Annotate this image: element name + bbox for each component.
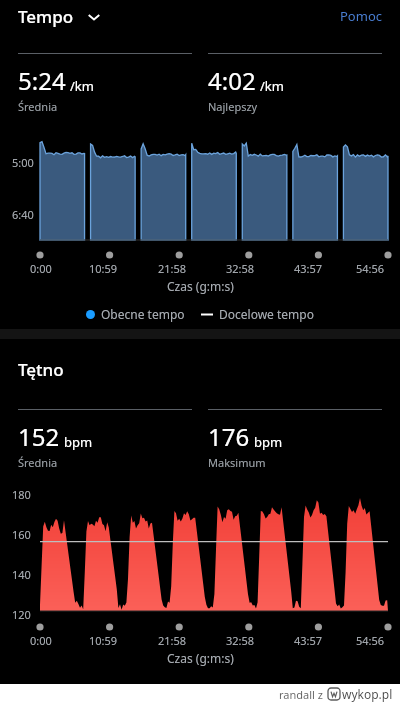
staticText: 5:00 bbox=[12, 155, 34, 170]
staticText: Maksimum bbox=[208, 455, 266, 470]
staticText: 4:02 bbox=[208, 64, 256, 97]
staticText: Pomoc bbox=[340, 7, 382, 25]
button[interactable]: Tętno bbox=[18, 358, 382, 381]
staticText: 6:40 bbox=[12, 207, 34, 222]
staticText: 140 bbox=[12, 567, 31, 582]
staticText: Czas (g:m:s) bbox=[167, 278, 234, 294]
staticText: 54:56 bbox=[356, 261, 385, 276]
staticText: 21:58 bbox=[158, 633, 187, 648]
staticText: 10:59 bbox=[89, 261, 118, 276]
staticText: Obecne tempo bbox=[101, 306, 185, 322]
staticText: 160 bbox=[12, 527, 31, 542]
staticText: 43:57 bbox=[294, 633, 323, 648]
staticText: 21:58 bbox=[158, 261, 187, 276]
staticText: /km bbox=[260, 77, 284, 95]
staticText: bpm bbox=[254, 433, 283, 451]
button[interactable]: Pomoc bbox=[340, 7, 382, 25]
staticText: Tempo bbox=[18, 5, 74, 28]
staticText: Średnia bbox=[18, 99, 58, 114]
staticText: 176 bbox=[208, 420, 250, 453]
staticText: 0:00 bbox=[30, 633, 52, 648]
staticText: 54:56 bbox=[356, 633, 385, 648]
staticText: Docelowe tempo bbox=[219, 306, 314, 322]
staticText: 0:00 bbox=[30, 261, 52, 276]
staticText: /km bbox=[70, 77, 94, 95]
staticText: randall z bbox=[279, 687, 323, 702]
staticText: 5:24 bbox=[18, 64, 66, 97]
staticText: 120 bbox=[12, 607, 31, 622]
staticText: 43:57 bbox=[294, 261, 323, 276]
button[interactable]: Tempo bbox=[18, 5, 102, 28]
staticText: wykop.pl bbox=[342, 686, 393, 702]
staticText: Najlepszy bbox=[208, 99, 258, 114]
staticText: Średnia bbox=[18, 455, 58, 470]
other: Change metric bbox=[86, 9, 102, 25]
staticText: Tętno bbox=[18, 358, 64, 381]
staticText: 32:58 bbox=[226, 261, 255, 276]
staticText: 180 bbox=[12, 487, 31, 502]
button[interactable]: 152 bbox=[18, 409, 192, 470]
staticText: 10:59 bbox=[89, 633, 118, 648]
button[interactable]: 5:24 bbox=[18, 53, 192, 114]
staticText: 32:58 bbox=[226, 633, 255, 648]
button[interactable]: 176 bbox=[208, 409, 382, 470]
staticText: Czas (g:m:s) bbox=[167, 650, 234, 666]
staticText: 152 bbox=[18, 420, 60, 453]
staticText: bpm bbox=[64, 433, 93, 451]
button[interactable]: 4:02 bbox=[208, 53, 382, 114]
